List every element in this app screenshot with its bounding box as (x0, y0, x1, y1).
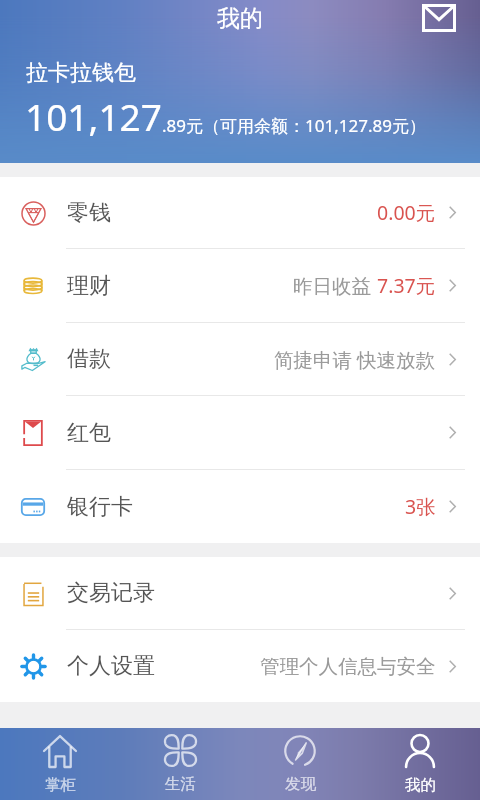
staticText: 个人设置 (67, 652, 155, 680)
staticText: 简捷申请 快速放款 (274, 346, 436, 373)
staticText: 101,127 (25, 91, 162, 141)
button[interactable]: 生活 (120, 728, 240, 800)
staticText: 我的 (217, 4, 263, 33)
button[interactable]: 我的 (360, 728, 480, 800)
staticText: 0.00元 (377, 199, 436, 226)
button[interactable]: Messages (415, 0, 463, 38)
staticText: .89元（可用余额：101,127.89元） (162, 114, 426, 137)
button[interactable]: 个人设置 (0, 630, 480, 702)
staticText: 掌柜 (45, 775, 76, 795)
staticText: 我的 (405, 775, 436, 795)
staticText: 零钱 (67, 199, 111, 227)
staticText: 3张 (405, 493, 436, 520)
button[interactable]: 零钱 (0, 177, 480, 248)
staticText: 管理个人信息与安全 (260, 654, 436, 679)
staticText: 7.37元 (377, 272, 436, 299)
staticText: 生活 (165, 774, 196, 794)
staticText: 交易记录 (67, 579, 155, 607)
staticText: 发现 (285, 774, 316, 794)
button[interactable]: 掌柜 (0, 728, 120, 800)
button[interactable]: 借款 (0, 323, 480, 395)
button[interactable]: 理财 (0, 249, 480, 322)
staticText: 银行卡 (67, 493, 133, 521)
staticText: 昨日收益 (293, 272, 377, 299)
staticText: 理财 (67, 272, 111, 300)
button[interactable]: 发现 (240, 728, 360, 800)
staticText: 拉卡拉钱包 (26, 59, 136, 87)
staticText: 借款 (67, 345, 111, 373)
button[interactable]: 红包 (0, 396, 480, 469)
button[interactable]: 交易记录 (0, 557, 480, 629)
button[interactable]: 银行卡 (0, 470, 480, 543)
staticText: 红包 (67, 419, 111, 447)
